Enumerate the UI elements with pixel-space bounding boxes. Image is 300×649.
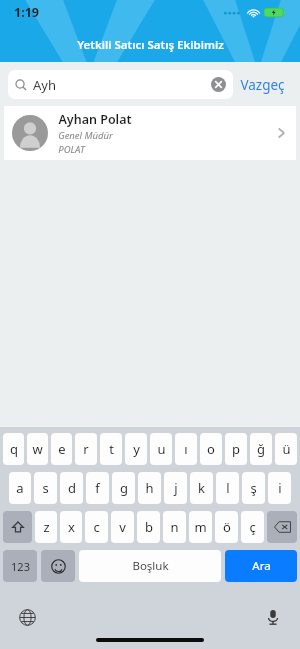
staticText: Vazgeç bbox=[240, 76, 285, 94]
staticText: POLAT bbox=[58, 143, 85, 156]
button[interactable]: Vazgeç bbox=[233, 72, 292, 98]
staticText: d bbox=[68, 479, 76, 497]
button[interactable]: Ara bbox=[225, 550, 297, 582]
staticText: q bbox=[10, 440, 18, 458]
button[interactable]: k bbox=[190, 472, 213, 504]
staticText: 123 bbox=[11, 559, 30, 574]
button[interactable]: f bbox=[86, 472, 109, 504]
staticText: Boşluk bbox=[132, 558, 169, 574]
staticText: Ayhan Polat bbox=[58, 111, 132, 128]
staticText: ı bbox=[184, 440, 188, 458]
button[interactable]: h bbox=[138, 472, 161, 504]
staticText: b bbox=[145, 518, 153, 536]
staticText: w bbox=[32, 440, 43, 458]
button[interactable]: q bbox=[3, 433, 24, 465]
staticText: j bbox=[174, 479, 178, 497]
staticText: Ayh bbox=[33, 76, 56, 94]
button[interactable]: b bbox=[137, 511, 160, 543]
button[interactable]: o bbox=[200, 433, 222, 465]
button[interactable]: 123 bbox=[3, 550, 37, 582]
button[interactable]: Ayhan Polat bbox=[4, 106, 296, 160]
staticText: i bbox=[278, 479, 282, 497]
staticText: s bbox=[42, 479, 49, 497]
staticText: y bbox=[133, 440, 140, 458]
staticText: ü bbox=[282, 440, 291, 458]
button[interactable]: x bbox=[60, 511, 82, 543]
button[interactable]: w bbox=[27, 433, 48, 465]
button[interactable]: u bbox=[150, 433, 172, 465]
staticText: Genel Müdür bbox=[58, 129, 113, 142]
button[interactable]: a bbox=[9, 472, 31, 504]
button[interactable]: s bbox=[34, 472, 57, 504]
staticText: z bbox=[43, 518, 50, 536]
button[interactable]: Backspace bbox=[267, 511, 297, 543]
button[interactable]: Shift bbox=[3, 511, 32, 543]
button[interactable]: l bbox=[216, 472, 239, 504]
button[interactable]: d bbox=[60, 472, 83, 504]
button[interactable]: e bbox=[51, 433, 72, 465]
button[interactable]: ı bbox=[175, 433, 197, 465]
button[interactable]: z bbox=[35, 511, 57, 543]
staticText: c bbox=[93, 518, 100, 536]
button[interactable]: ü bbox=[275, 433, 297, 465]
staticText: ç bbox=[249, 518, 256, 536]
staticText: t bbox=[109, 440, 114, 458]
button[interactable]: ğ bbox=[250, 433, 272, 465]
button[interactable]: n bbox=[163, 511, 186, 543]
button[interactable]: Boşluk bbox=[79, 550, 221, 582]
staticText: 1:19 bbox=[14, 4, 39, 21]
button[interactable]: g bbox=[112, 472, 135, 504]
button[interactable]: c bbox=[85, 511, 108, 543]
staticText: ö bbox=[223, 518, 231, 536]
button[interactable]: Emoji bbox=[41, 550, 75, 582]
button[interactable]: ş bbox=[242, 472, 265, 504]
staticText: h bbox=[145, 479, 154, 497]
button[interactable]: Ayh bbox=[8, 70, 233, 99]
staticText: p bbox=[232, 440, 240, 458]
staticText: r bbox=[83, 440, 89, 458]
staticText: l bbox=[226, 479, 230, 497]
button[interactable]: t bbox=[100, 433, 122, 465]
button[interactable]: i bbox=[268, 472, 291, 504]
staticText: ğ bbox=[257, 440, 265, 458]
button[interactable]: ç bbox=[241, 511, 264, 543]
staticText: a bbox=[16, 479, 24, 497]
button[interactable]: r bbox=[75, 433, 97, 465]
staticText: f bbox=[95, 479, 100, 497]
button[interactable]: Clear text bbox=[211, 77, 226, 92]
button[interactable]: m bbox=[189, 511, 212, 543]
staticText: Yetkili Satıcı Satış Ekibimiz bbox=[77, 37, 224, 53]
button[interactable]: p bbox=[225, 433, 247, 465]
staticText: g bbox=[120, 479, 128, 497]
button[interactable]: v bbox=[111, 511, 134, 543]
button[interactable]: Dictation bbox=[260, 604, 286, 630]
staticText: v bbox=[119, 518, 126, 536]
staticText: e bbox=[58, 440, 66, 458]
staticText: x bbox=[68, 518, 75, 536]
button[interactable]: ö bbox=[215, 511, 238, 543]
staticText: Ara bbox=[252, 558, 271, 574]
staticText: k bbox=[198, 479, 205, 497]
button[interactable]: y bbox=[125, 433, 147, 465]
staticText: o bbox=[207, 440, 215, 458]
staticText: u bbox=[157, 440, 166, 458]
staticText: m bbox=[194, 518, 207, 536]
button[interactable]: j bbox=[164, 472, 187, 504]
staticText: ş bbox=[250, 479, 257, 497]
staticText: n bbox=[170, 518, 179, 536]
button[interactable]: Change keyboard language bbox=[14, 604, 40, 630]
